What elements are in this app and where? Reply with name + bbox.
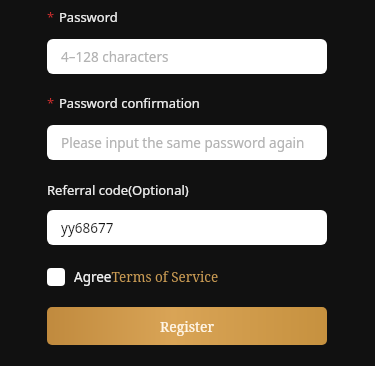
- button[interactable]: Register: [47, 307, 327, 345]
- staticText: AgreeTerms of Service: [74, 268, 219, 286]
- staticText: yy68677: [61, 219, 114, 237]
- staticText: *: [47, 94, 55, 112]
- staticText: *: [47, 8, 55, 26]
- other: Agree to terms checkbox: [47, 268, 65, 286]
- staticText: Referral code(Optional): [47, 181, 189, 199]
- staticText: Register: [160, 317, 215, 336]
- button[interactable]: Agree to terms checkbox: [47, 266, 219, 288]
- staticText: 4–128 characters: [61, 48, 169, 66]
- button[interactable]: yy68677: [47, 210, 327, 245]
- staticText: Password: [59, 8, 118, 26]
- staticText: Password confirmation: [59, 94, 200, 112]
- button[interactable]: 4–128 characters: [47, 39, 327, 74]
- staticText: Please input the same password again: [61, 134, 305, 152]
- button[interactable]: Please input the same password again: [47, 125, 327, 160]
